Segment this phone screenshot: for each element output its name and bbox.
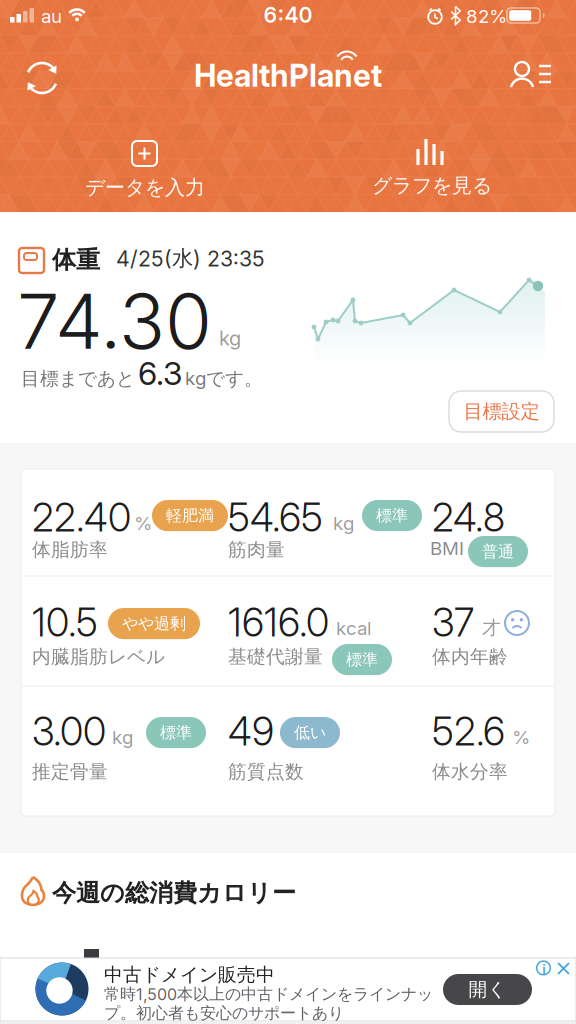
button[interactable]: Close ad (557, 962, 570, 975)
staticText: 6.3 (138, 354, 182, 393)
button[interactable]: Profile (508, 56, 552, 100)
staticText: 低い (294, 722, 326, 743)
staticText: 4/25(水) 23:35 (116, 245, 265, 272)
staticText: 筋肉量 (228, 538, 285, 561)
staticText: 中古ドメイン販売中 (104, 963, 275, 986)
button[interactable]: グラフを見る (357, 139, 507, 195)
staticText: 74.30 (17, 275, 212, 367)
staticText: BMI (430, 537, 464, 560)
staticText: 54.65 (228, 494, 323, 541)
staticText: 22.40 (32, 494, 131, 541)
staticText: 軽肥満 (166, 505, 214, 526)
staticText: 24.8 (432, 494, 505, 541)
staticText: プ。初心者も安心のサポートあり (104, 1003, 344, 1023)
staticText: 37 (432, 599, 474, 646)
staticText: 49 (228, 708, 274, 755)
staticText: 体内年齢 (432, 645, 508, 668)
staticText: 筋質点数 (228, 760, 304, 783)
staticText: kcal (336, 617, 372, 640)
staticText: 標準 (160, 722, 192, 743)
staticText: au (41, 5, 62, 28)
staticText: データを入力 (85, 175, 205, 200)
staticText: 推定骨量 (32, 760, 108, 783)
staticText: kg (219, 326, 241, 350)
staticText: 標準 (376, 505, 408, 526)
staticText: 体水分率 (432, 760, 508, 783)
staticText: 体重 (52, 245, 100, 275)
staticText: グラフを見る (372, 173, 492, 198)
button[interactable]: Ad info (536, 961, 551, 976)
staticText: 普通 (482, 541, 514, 562)
staticText: 今週の総消費カロリー (52, 878, 296, 908)
staticText: 内臓脂肪レベル (32, 645, 165, 668)
staticText: やや過剰 (122, 613, 186, 634)
staticText: 標準 (346, 649, 378, 670)
staticText: 目標設定 (463, 399, 539, 424)
button[interactable]: データを入力 (70, 141, 220, 197)
staticText: 52.6 (432, 708, 505, 755)
staticText: 基礎代謝量 (228, 645, 323, 668)
staticText: 目標まであと (21, 367, 135, 390)
button[interactable]: Sync (20, 56, 64, 100)
staticText: kg (333, 512, 354, 535)
staticText: 体脂肪率 (32, 538, 108, 561)
staticText: % (134, 512, 152, 535)
staticText: 常時1,500本以上の中古ドメインをラインナッ (104, 984, 433, 1004)
staticText: 才 (482, 616, 501, 639)
staticText: 3.00 (32, 708, 106, 755)
button[interactable]: 中古ドメイン販売中 (0, 958, 576, 1021)
staticText: kgです。 (185, 367, 263, 390)
staticText: 開く (468, 978, 506, 1001)
staticText: i (542, 962, 545, 978)
button[interactable]: 目標設定 (449, 391, 554, 432)
staticText: % (512, 726, 530, 749)
staticText: kg (112, 726, 133, 749)
staticText: 10.5 (32, 599, 98, 646)
staticText: 82% (466, 5, 507, 28)
staticText: 6:40 (263, 2, 312, 28)
staticText: 1616.0 (228, 599, 329, 646)
button[interactable]: 開く (443, 974, 532, 1005)
staticText: HealthPlanet (194, 57, 382, 94)
